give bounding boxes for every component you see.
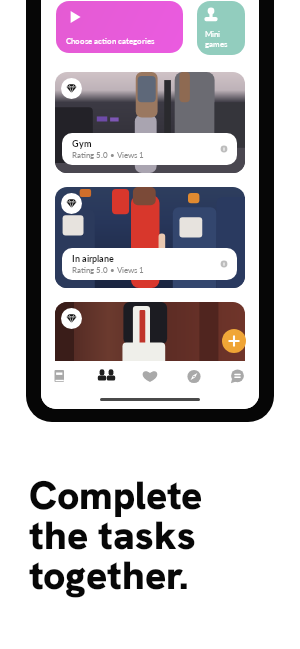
button[interactable]: Friends (94, 365, 120, 391)
button[interactable]: Premium (61, 308, 82, 329)
button[interactable]: Favourites (137, 365, 163, 391)
button[interactable]: Premium (61, 78, 82, 99)
button[interactable] (62, 248, 237, 280)
button[interactable]: Explore (181, 365, 207, 391)
button[interactable] (197, 1, 245, 55)
button[interactable]: Premium (55, 187, 245, 288)
button[interactable]: Premium (55, 302, 245, 403)
button[interactable]: Premium (61, 193, 82, 214)
button[interactable] (62, 133, 237, 165)
button[interactable] (56, 1, 183, 53)
button[interactable]: Messages (224, 365, 250, 391)
button[interactable]: Library (50, 365, 76, 391)
button[interactable]: Add (222, 329, 246, 353)
button[interactable]: Premium (55, 72, 245, 173)
